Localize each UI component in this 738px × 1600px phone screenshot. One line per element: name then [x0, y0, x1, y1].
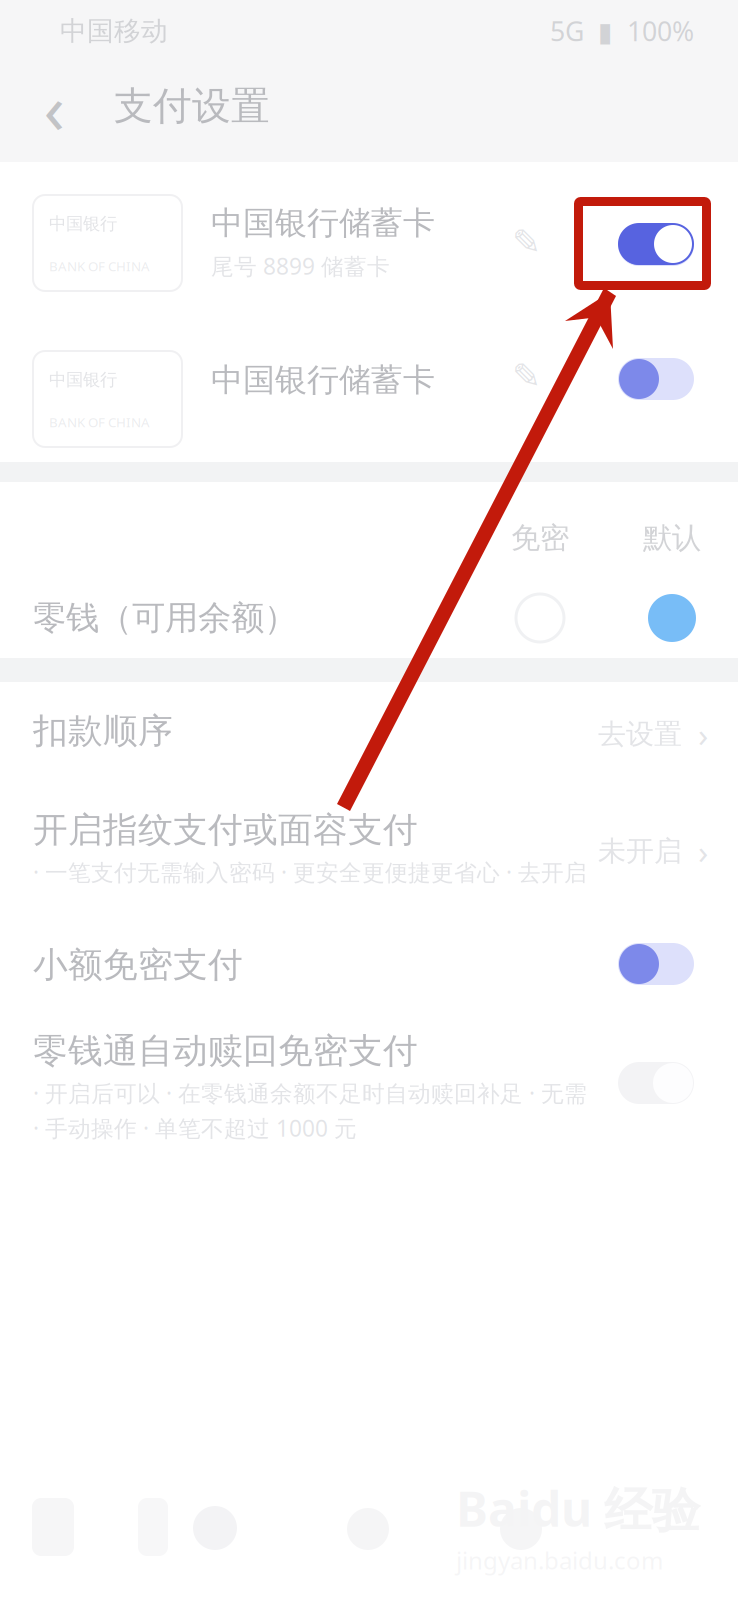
staticText: 5G ▮ 100%: [550, 13, 694, 49]
staticText: Baidu 经验: [456, 1476, 700, 1540]
staticText: 中国银行: [49, 213, 117, 234]
staticText: 开启指纹支付或面容支付: [33, 809, 418, 851]
staticText: 默认: [643, 520, 701, 556]
staticText: ✎: [512, 356, 541, 396]
staticText: 零钱（可用余额）: [33, 597, 297, 638]
staticText: · 手动操作 · 单笔不超过 1000 元: [33, 1113, 357, 1143]
staticText: 尾号 8899 储蓄卡: [211, 251, 390, 281]
staticText: 中国银行储蓄卡: [211, 203, 435, 243]
staticText: 中国移动: [60, 15, 168, 47]
staticText: 去设置: [598, 717, 682, 751]
button[interactable]: 扣款顺序: [0, 682, 738, 778]
staticText: 未开启: [598, 834, 682, 868]
button[interactable]: 返回: [26, 78, 82, 136]
staticText: BANK OF CHINA: [49, 257, 150, 275]
staticText: ›: [698, 712, 708, 756]
staticText: ›: [698, 829, 708, 873]
staticText: 扣款顺序: [33, 710, 173, 752]
staticText: ✎: [512, 222, 541, 262]
staticText: · 开启后可以 · 在零钱通余额不足时自动赎回补足 · 无需: [33, 1078, 587, 1108]
button[interactable]: 小额免密支付: [0, 918, 738, 1014]
staticText: 支付设置: [114, 82, 270, 130]
button[interactable]: 主页: [193, 1506, 237, 1550]
button[interactable]: 零钱通自动赎回免密支付: [0, 1014, 738, 1174]
staticText: 中国银行: [49, 369, 117, 390]
button[interactable]: 中国银行: [0, 162, 738, 318]
button[interactable]: 返回桌面: [500, 1508, 542, 1550]
staticText: 零钱通自动赎回免密支付: [33, 1030, 418, 1072]
staticText: jingyan.baidu.com: [456, 1544, 663, 1576]
staticText: ‹: [43, 61, 64, 153]
staticText: · 一笔支付无需输入密码 · 更安全更便捷更省心 · 去开启: [33, 857, 587, 887]
button[interactable]: 任务: [347, 1508, 389, 1550]
staticText: BANK OF CHINA: [49, 413, 150, 431]
button[interactable]: 零钱（可用余额）: [0, 572, 738, 658]
button[interactable]: 开启指纹支付或面容支付: [0, 778, 738, 918]
staticText: 小额免密支付: [33, 944, 243, 986]
button[interactable]: 中国银行: [0, 318, 738, 462]
staticText: 中国银行储蓄卡: [211, 360, 435, 400]
staticText: 免密: [511, 520, 569, 556]
